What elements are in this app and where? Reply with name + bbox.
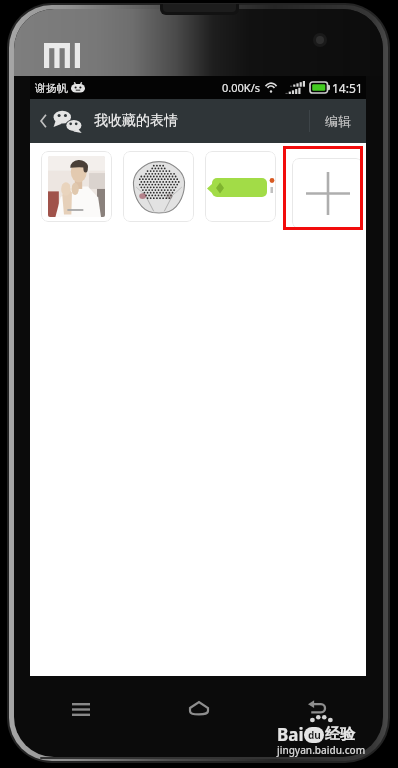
button[interactable]: Home: [179, 688, 219, 728]
button[interactable]: Menu: [61, 689, 101, 729]
button[interactable]: Back: [297, 687, 337, 727]
staticText: Bai: [277, 723, 304, 746]
button[interactable]: Back: [40, 99, 82, 143]
button[interactable]: Add sticker: [292, 158, 363, 229]
staticText: 我收藏的表情: [94, 112, 178, 130]
staticText: 经验: [325, 725, 355, 744]
staticText: du: [308, 728, 321, 742]
button[interactable]: Sticker mesh ball: [123, 151, 194, 222]
staticText: 谢扬帆: [35, 81, 68, 95]
button[interactable]: Sticker chat bubble: [205, 151, 276, 222]
staticText: 0.00K/s: [222, 80, 260, 95]
staticText: 14:51: [332, 80, 363, 96]
button[interactable]: Sticker photo: [41, 151, 112, 222]
button[interactable]: 编辑: [310, 99, 366, 143]
staticText: 编辑: [325, 113, 351, 129]
staticText: jingyan.baidu.com: [277, 743, 366, 757]
